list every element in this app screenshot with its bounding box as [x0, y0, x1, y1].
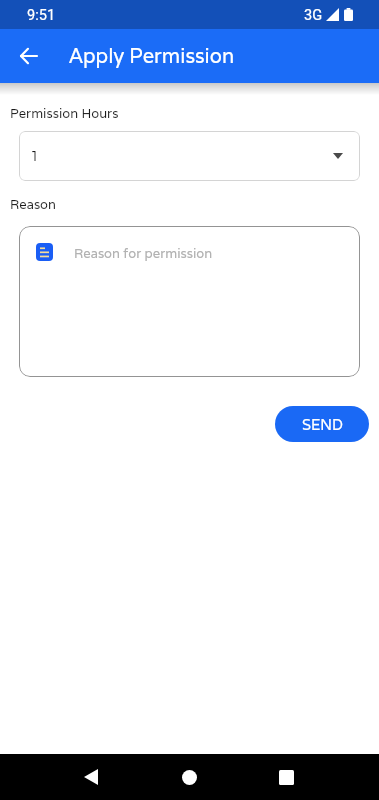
staticText: 3G: [304, 6, 323, 23]
staticText: Reason for permission: [74, 245, 213, 262]
staticText: 1: [30, 148, 39, 164]
button[interactable]: Home: [166, 762, 212, 792]
button[interactable]: Recents: [263, 762, 309, 792]
staticText: Permission Hours: [10, 105, 119, 122]
button[interactable]: 1: [19, 131, 360, 181]
staticText: SEND: [302, 415, 343, 434]
button[interactable]: SEND: [275, 406, 369, 442]
button[interactable]: Reason for permission: [19, 226, 360, 377]
staticText: 9:51: [27, 6, 56, 23]
button[interactable]: Back: [68, 762, 114, 792]
button[interactable]: Back: [8, 36, 48, 76]
staticText: Reason: [10, 196, 56, 213]
staticText: Apply Permission: [69, 43, 235, 69]
